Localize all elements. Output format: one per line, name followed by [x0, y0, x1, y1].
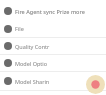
button[interactable]: Add	[86, 75, 105, 94]
staticText: Model Optio	[15, 60, 48, 67]
button[interactable]: Fire Agent sync Prize more	[0, 2, 106, 20]
button[interactable]: Model Optio	[0, 55, 106, 71]
button[interactable]: Model Sharin	[0, 72, 106, 90]
button[interactable]: Quality Contr	[0, 38, 106, 54]
staticText: File	[15, 25, 24, 32]
staticText: Fire Agent sync Prize more	[15, 8, 85, 15]
staticText: Model Sharin	[15, 78, 50, 85]
staticText: Quality Contr	[15, 43, 50, 50]
button[interactable]: File	[0, 20, 106, 37]
